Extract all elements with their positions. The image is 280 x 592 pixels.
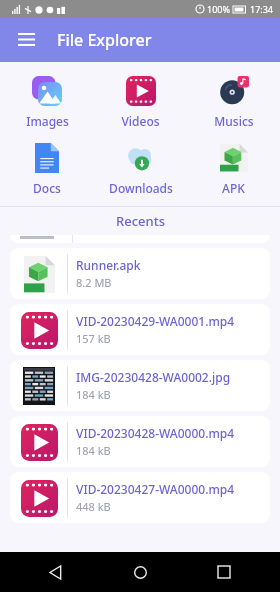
button[interactable]: VID-20230428-WA0000.mp4 bbox=[10, 416, 270, 467]
button[interactable]: Recent apps bbox=[208, 556, 240, 588]
button[interactable]: Docs bbox=[0, 139, 94, 198]
button[interactable]: Home bbox=[124, 556, 156, 588]
button[interactable]: Videos bbox=[94, 72, 187, 131]
staticText: Downloads bbox=[109, 180, 173, 196]
staticText: 157 kB bbox=[76, 331, 111, 346]
staticText: Runner.apk bbox=[76, 257, 141, 273]
button[interactable]: IMG-20230428-WA0002.jpg bbox=[10, 360, 270, 411]
staticText: 184 kB bbox=[76, 387, 111, 402]
staticText: 184 kB bbox=[76, 443, 111, 458]
button[interactable]: Runner.apk bbox=[10, 248, 270, 299]
staticText: Docs bbox=[33, 180, 61, 196]
button[interactable]: Open navigation menu bbox=[8, 22, 44, 58]
staticText: Recents bbox=[116, 212, 165, 230]
staticText: VID-20230428-WA0000.mp4 bbox=[76, 425, 235, 441]
staticText: IMG-20230428-WA0002.jpg bbox=[76, 369, 231, 385]
button[interactable]: APK bbox=[187, 139, 280, 198]
button[interactable]: VID-20230427-WA0000.mp4 bbox=[10, 472, 270, 523]
button[interactable]: Images bbox=[0, 72, 94, 131]
button[interactable]: Downloads bbox=[94, 139, 187, 198]
button[interactable]: Back bbox=[40, 556, 72, 588]
staticText: Videos bbox=[121, 113, 160, 129]
staticText: Images bbox=[26, 113, 69, 129]
staticText: File Explorer bbox=[57, 29, 152, 51]
staticText: 448 kB bbox=[76, 499, 111, 514]
staticText: 8.2 MB bbox=[76, 275, 112, 290]
staticText: APK bbox=[222, 180, 245, 196]
button[interactable]: VID-20230429-WA0001.mp4 bbox=[10, 304, 270, 355]
staticText: VID-20230429-WA0001.mp4 bbox=[76, 313, 235, 329]
staticText: Musics bbox=[214, 113, 254, 129]
staticText: 100% bbox=[207, 3, 230, 15]
staticText: 17:34 bbox=[250, 3, 274, 15]
button[interactable] bbox=[10, 235, 270, 243]
button[interactable]: Musics bbox=[187, 72, 280, 131]
staticText: VID-20230427-WA0000.mp4 bbox=[76, 481, 235, 497]
